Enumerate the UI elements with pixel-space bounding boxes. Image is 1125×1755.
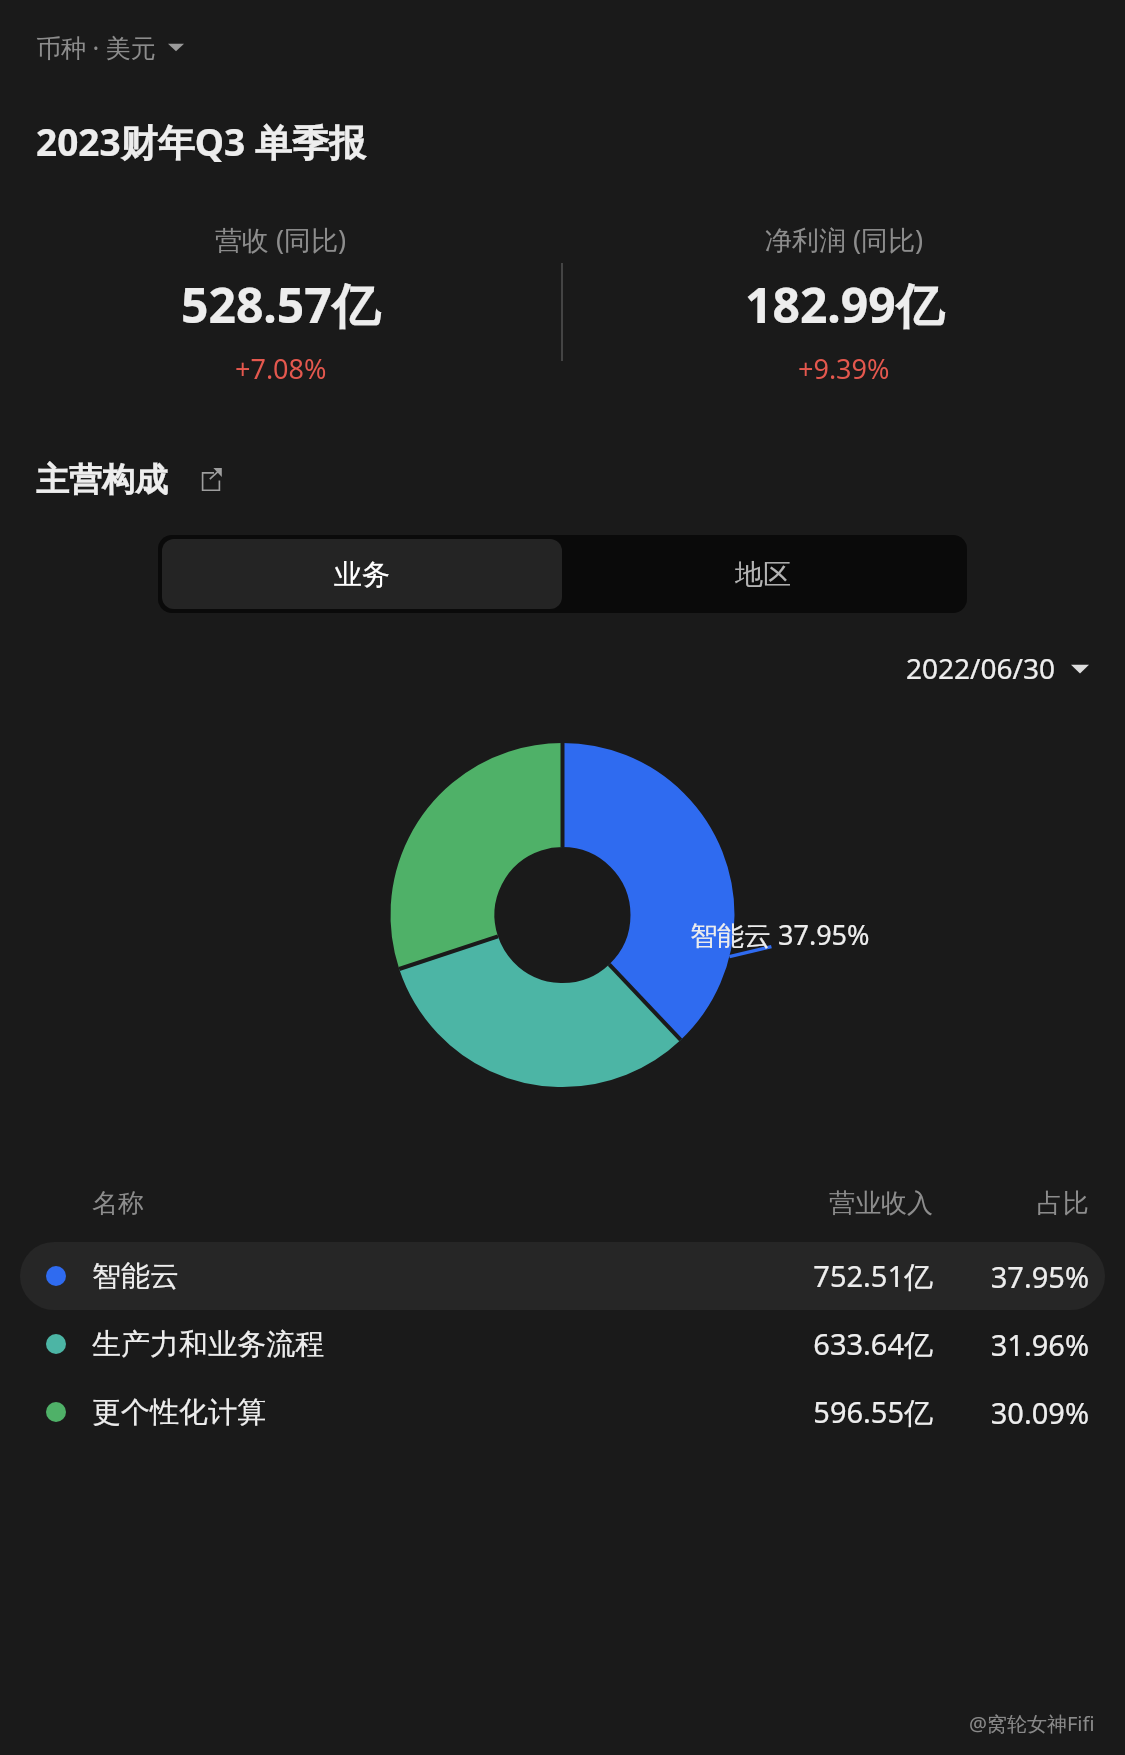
button[interactable]: 业务 (162, 539, 562, 609)
staticText: 营收 (同比) (215, 221, 347, 258)
button[interactable]: 地区 (562, 539, 963, 609)
staticText: 596.55亿 (743, 1392, 933, 1432)
button[interactable]: 币种 · 美元 (34, 26, 186, 68)
staticText: 营业收入 (743, 1187, 933, 1220)
staticText: 币种 · 美元 (36, 30, 156, 64)
staticText: 智能云 37.95% (690, 916, 870, 953)
staticText: 更个性化计算 (92, 1394, 743, 1431)
staticText: 633.64亿 (743, 1324, 933, 1364)
button[interactable]: 净利润 (同比) (563, 221, 1125, 387)
staticText: @窝轮女神Fifi (969, 1710, 1095, 1737)
staticText: 37.95% (959, 1257, 1089, 1296)
staticText: 智能云 (92, 1258, 743, 1295)
button[interactable]: 生产力和业务流程 (20, 1310, 1105, 1378)
button[interactable]: 2022/06/30 (898, 645, 1097, 691)
staticText: 地区 (735, 557, 791, 592)
staticText: 净利润 (同比) (765, 221, 924, 258)
staticText: 生产力和业务流程 (92, 1326, 743, 1363)
staticText: +9.39% (798, 350, 890, 387)
staticText: 2022/06/30 (906, 649, 1055, 687)
staticText: 528.57亿 (181, 272, 380, 338)
staticText: +7.08% (235, 350, 327, 387)
staticText: 名称 (92, 1187, 743, 1220)
button[interactable]: 营收 (同比) (0, 221, 561, 387)
staticText: 182.99亿 (745, 272, 944, 338)
staticText: 752.51亿 (743, 1256, 933, 1296)
staticText: 占比 (959, 1187, 1089, 1220)
staticText: 2023财年Q3 单季报 (36, 116, 366, 167)
button[interactable]: 智能云 (20, 1242, 1105, 1310)
button[interactable]: 更个性化计算 (20, 1378, 1105, 1446)
staticText: 31.96% (959, 1325, 1089, 1364)
staticText: 30.09% (959, 1393, 1089, 1432)
button[interactable]: Share (190, 459, 232, 501)
staticText: 主营构成 (36, 459, 168, 501)
staticText: 业务 (334, 557, 390, 592)
